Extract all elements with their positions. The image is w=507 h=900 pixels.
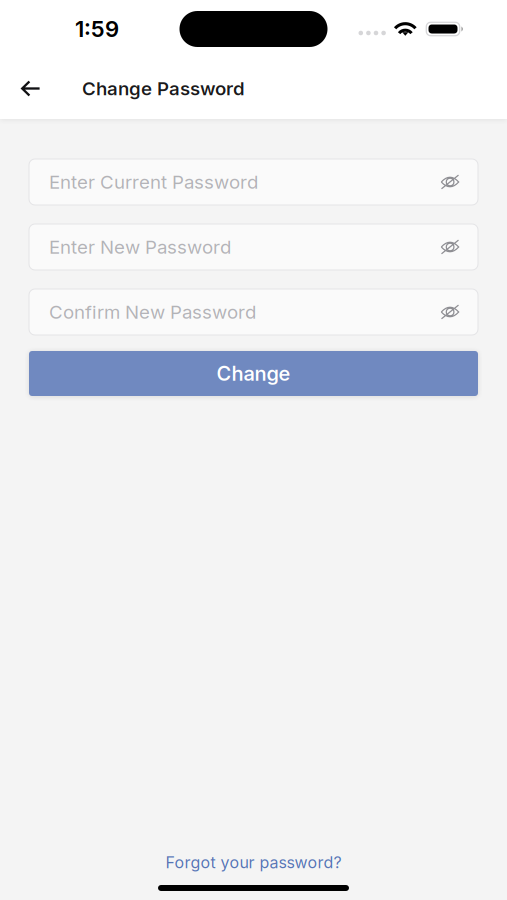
button[interactable]: Back xyxy=(11,66,51,110)
staticText: Forgot your password? xyxy=(165,853,341,872)
staticText: Confirm New Password xyxy=(49,301,256,323)
staticText: Change xyxy=(216,361,290,386)
staticText: Change Password xyxy=(82,77,245,100)
button[interactable]: Show password xyxy=(427,289,473,335)
button[interactable]: Forgot your password? xyxy=(165,853,341,872)
button[interactable]: Show password xyxy=(427,159,473,205)
staticText: Enter New Password xyxy=(49,236,231,258)
button[interactable]: Change xyxy=(29,351,478,396)
staticText: Enter Current Password xyxy=(49,171,258,193)
staticText: 1:59 xyxy=(75,16,119,42)
button[interactable]: Show password xyxy=(427,224,473,270)
